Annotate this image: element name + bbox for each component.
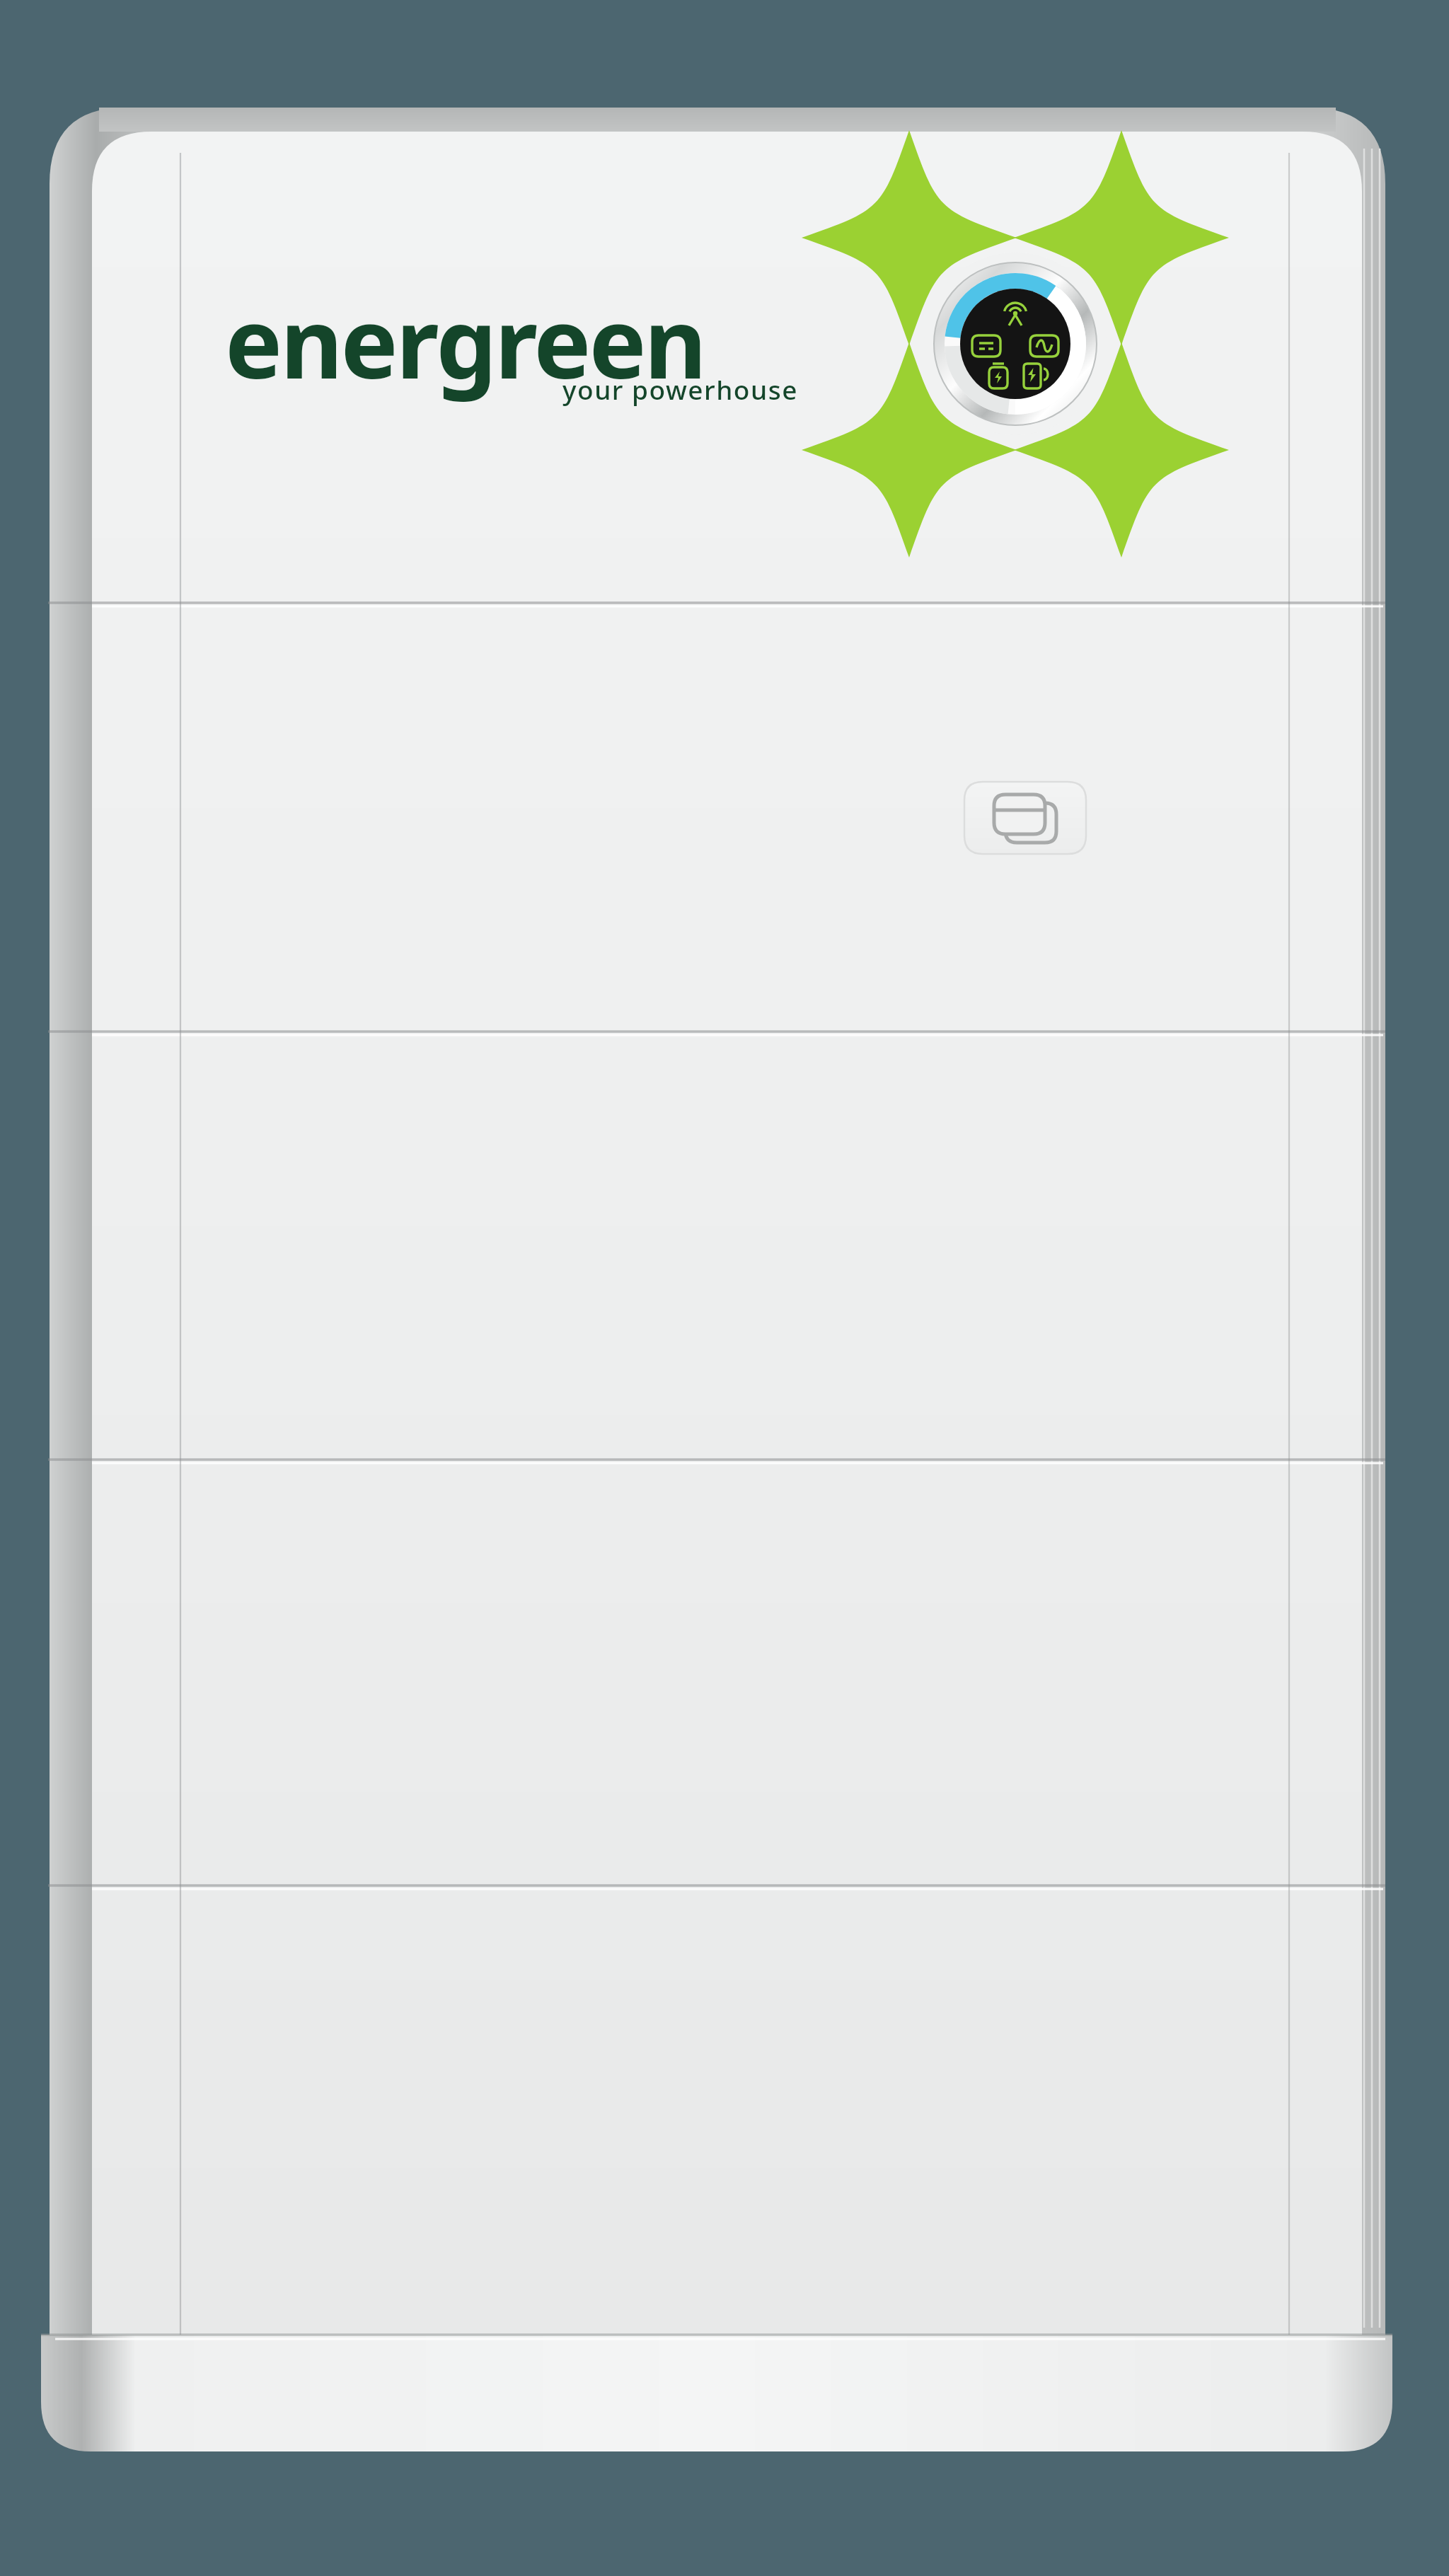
button[interactable]: energreen home battery system [0,0,1449,2576]
